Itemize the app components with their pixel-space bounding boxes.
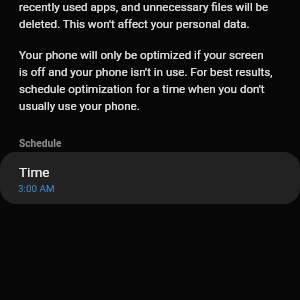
staticText: Time bbox=[19, 164, 50, 180]
staticText: 3:00 AM bbox=[18, 183, 55, 195]
button[interactable]: Time bbox=[0, 152, 300, 204]
staticText: recently used apps, and unnecessary file… bbox=[19, 0, 269, 32]
staticText: Your phone will only be optimized if you… bbox=[19, 46, 273, 114]
staticText: Schedule bbox=[19, 138, 62, 150]
